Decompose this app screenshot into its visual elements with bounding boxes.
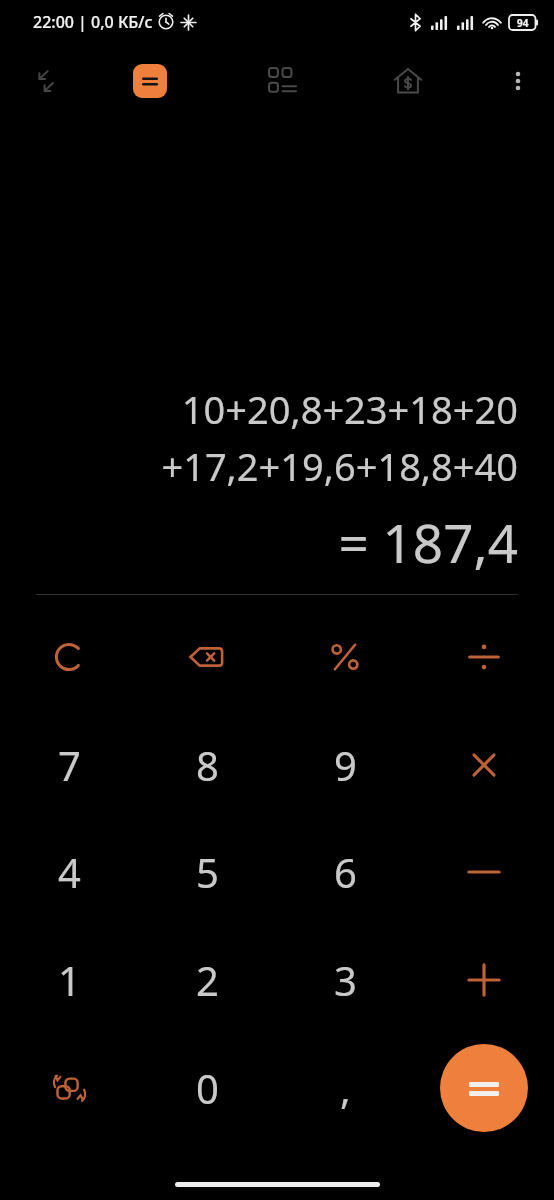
- button[interactable]: 4: [15, 818, 123, 926]
- staticText: 3: [334, 953, 357, 1007]
- button[interactable]: 5: [153, 818, 261, 926]
- button[interactable]: 9: [291, 711, 399, 819]
- staticText: 6: [334, 845, 357, 899]
- button[interactable]: Calculator: [133, 64, 167, 98]
- button[interactable]: More options: [494, 57, 542, 105]
- button[interactable]: Convert: [15, 1034, 123, 1142]
- button[interactable]: 0: [153, 1034, 261, 1142]
- staticText: 22:00 | 0,0 КБ/с: [33, 11, 153, 33]
- staticText: 5: [196, 845, 219, 899]
- staticText: 0: [196, 1061, 219, 1115]
- button[interactable]: Backspace: [153, 603, 261, 711]
- staticText: 8: [196, 738, 219, 792]
- button[interactable]: 6: [291, 818, 399, 926]
- button[interactable]: Equals: [440, 1044, 528, 1132]
- button[interactable]: Unit converter: [258, 57, 306, 105]
- button[interactable]: 7: [15, 711, 123, 819]
- button[interactable]: Divide: [430, 603, 538, 711]
- button[interactable]: 8: [153, 711, 261, 819]
- staticText: 7: [58, 738, 81, 792]
- staticText: 1: [58, 953, 81, 1007]
- staticText: +17,2+19,6+18,8+40: [36, 440, 518, 492]
- button[interactable]: ,: [291, 1034, 399, 1142]
- button[interactable]: Plus: [430, 926, 538, 1034]
- button[interactable]: Clear: [15, 603, 123, 711]
- button[interactable]: 2: [153, 926, 261, 1034]
- button[interactable]: Percent: [291, 603, 399, 711]
- button[interactable]: Mortgage: [384, 57, 432, 105]
- staticText: 9: [334, 738, 357, 792]
- staticText: = 187,4: [36, 506, 518, 578]
- button[interactable]: 3: [291, 926, 399, 1034]
- staticText: ,: [340, 1061, 351, 1115]
- staticText: 10+20,8+23+18+20: [36, 383, 518, 435]
- button[interactable]: Collapse: [18, 57, 66, 105]
- button[interactable]: Minus: [430, 818, 538, 926]
- staticText: 4: [58, 845, 81, 899]
- button[interactable]: 1: [15, 926, 123, 1034]
- button[interactable]: Multiply: [430, 711, 538, 819]
- staticText: 2: [196, 953, 219, 1007]
- staticText: 94: [517, 16, 529, 30]
